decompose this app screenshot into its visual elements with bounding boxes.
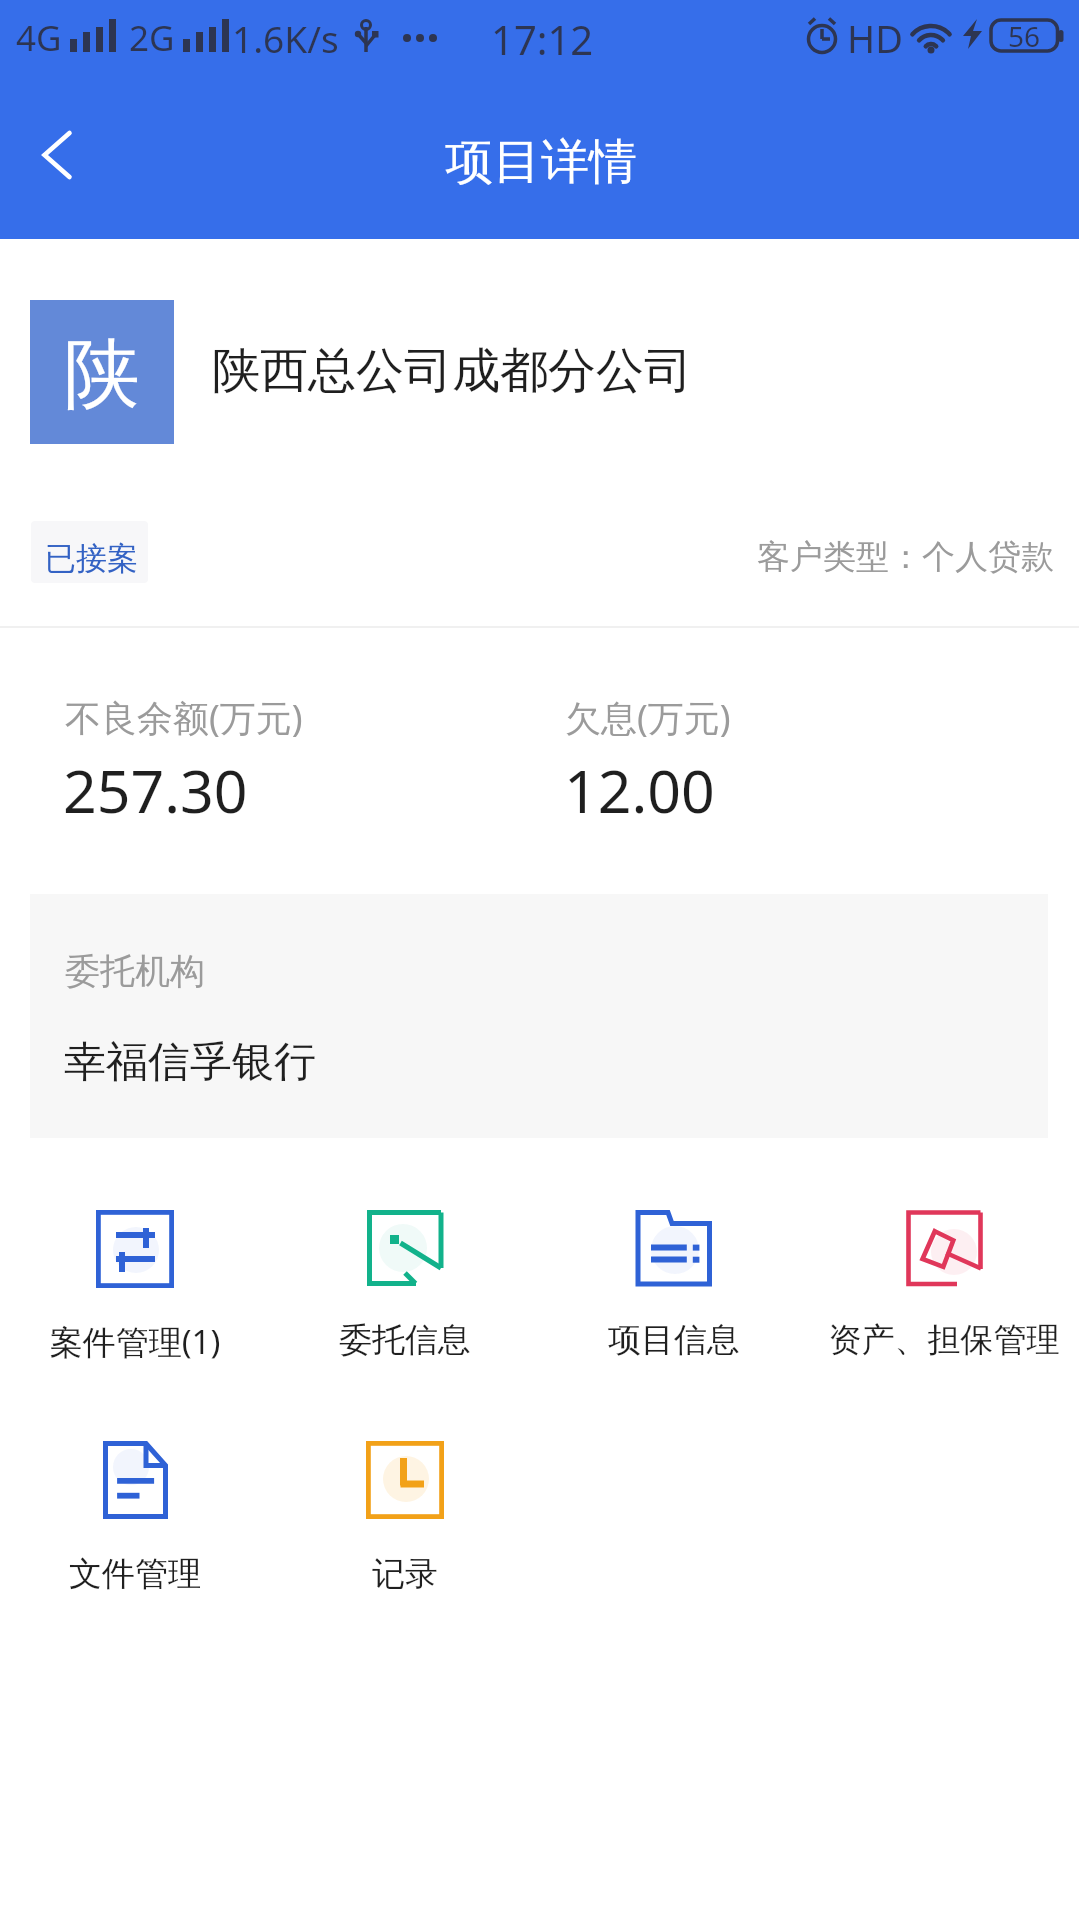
staticText: 项目详情 [445,132,637,192]
staticText: 资产、担保管理 [809,1319,1079,1361]
staticText: 257.30 [63,750,248,830]
staticText: 2G [129,14,175,62]
button[interactable]: 已接案 [31,521,148,583]
button[interactable]: 委托信息 [270,1182,540,1381]
staticText: 记录 [270,1553,540,1595]
staticText: 项目信息 [539,1319,809,1361]
staticText: 已接案 [45,539,138,578]
staticText: 委托信息 [270,1319,540,1361]
button[interactable]: 文件管理 [0,1413,270,1615]
button[interactable]: 记录 [270,1413,540,1615]
button[interactable]: 案件管理(1) [0,1182,270,1381]
staticText: 不良余额(万元) [65,693,303,742]
staticText: 陕 [64,327,140,423]
staticText: 12.00 [564,750,715,830]
staticText: 文件管理 [0,1553,270,1595]
button[interactable]: 项目信息 [539,1182,809,1381]
staticText: 1.6K/s [232,13,339,63]
staticText: 17:12 [491,12,594,66]
button[interactable]: Back [8,85,108,195]
staticText: HD [847,12,903,64]
staticText: 客户类型：个人贷款 [757,536,1054,578]
staticText: 幸福信孚银行 [64,1036,316,1089]
staticText: 欠息(万元) [565,693,731,742]
staticText: 56 [1008,17,1041,53]
staticText: 陕西总公司成都分公司 [212,341,692,401]
button[interactable]: 资产、担保管理 [809,1182,1079,1381]
staticText: 委托机构 [65,949,205,993]
staticText: 案件管理(1) [0,1319,270,1364]
staticText: 4G [16,14,62,62]
